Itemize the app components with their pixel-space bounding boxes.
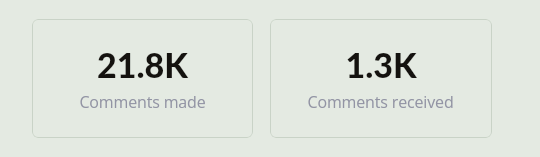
button[interactable]: 21.8K [32, 19, 253, 138]
staticText: Comments made [79, 91, 206, 113]
staticText: 1.3K [345, 44, 417, 85]
button[interactable]: 1.3K [270, 19, 492, 138]
staticText: Comments received [307, 91, 454, 113]
staticText: 21.8K [97, 44, 188, 85]
